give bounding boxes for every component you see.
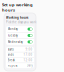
staticText: 12:00 bbox=[23, 58, 32, 62]
button[interactable]: Monday bbox=[6, 26, 34, 32]
staticText: Ends bbox=[7, 53, 13, 56]
staticText: Pick the days you work bbox=[6, 20, 36, 24]
staticText: Daily bbox=[26, 64, 32, 67]
staticText: 9:00 bbox=[25, 48, 32, 51]
button[interactable]: Ends bbox=[6, 52, 34, 57]
button[interactable]: Wednesday bbox=[6, 39, 34, 45]
staticText: Tuesday bbox=[7, 34, 17, 37]
staticText: Working hours bbox=[6, 16, 28, 19]
button[interactable]: Starts bbox=[6, 47, 34, 52]
button[interactable]: Tuesday bbox=[6, 32, 34, 38]
button[interactable]: Repeat bbox=[6, 63, 34, 68]
button[interactable]: Break bbox=[6, 58, 34, 63]
staticText: Repeat bbox=[7, 64, 17, 67]
staticText: 17:00 bbox=[23, 53, 32, 56]
staticText: Set up working hours bbox=[2, 2, 33, 13]
staticText: Monday bbox=[7, 27, 17, 31]
staticText: Wednesday bbox=[7, 40, 22, 44]
staticText: Starts bbox=[7, 48, 13, 51]
staticText: Break bbox=[7, 58, 14, 62]
